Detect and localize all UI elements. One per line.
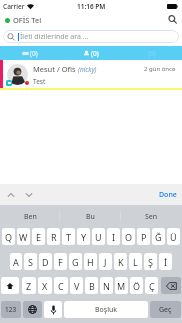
button[interactable]: X [38, 277, 52, 294]
staticText: (0) [148, 49, 156, 58]
button[interactable]: A [10, 253, 22, 270]
staticText: Carrier [3, 2, 25, 11]
button[interactable]: D [39, 253, 52, 270]
staticText: G [72, 256, 79, 268]
button[interactable]: L [129, 253, 142, 270]
staticText: 11:16 PM [77, 2, 106, 11]
button[interactable]: İleti dizilerinde ara ... [3, 30, 179, 43]
staticText: Boşluk [95, 305, 118, 315]
button[interactable]: K [114, 253, 127, 270]
button[interactable]: C [54, 277, 68, 294]
button[interactable]: Shift [1, 277, 19, 294]
button[interactable]: Ü [167, 228, 180, 245]
staticText: P [141, 231, 147, 243]
staticText: Done [159, 190, 177, 200]
button[interactable]: Ğ [152, 228, 165, 245]
button[interactable]: Search [167, 14, 178, 25]
button[interactable]: Previous field [4, 188, 18, 202]
staticText: İ [164, 256, 168, 268]
button[interactable]: N [100, 277, 113, 294]
staticText: K [118, 256, 124, 268]
button[interactable]: M [115, 277, 128, 294]
staticText: Z [26, 280, 32, 292]
staticText: Ö [133, 280, 141, 292]
button[interactable]: B [85, 277, 98, 294]
button[interactable]: Ç [145, 277, 158, 294]
staticText: OFİS Tel [13, 15, 42, 25]
staticText: İleti dizilerinde ara ... [20, 32, 89, 42]
button[interactable]: Ben [0, 205, 60, 228]
staticText: E [36, 231, 42, 243]
button[interactable]: Next field [22, 188, 36, 202]
staticText: O [125, 231, 133, 243]
button[interactable]: V [70, 277, 83, 294]
staticText: Sen [145, 212, 158, 222]
button[interactable]: Next keyboard [23, 301, 42, 318]
staticText: U [95, 231, 102, 243]
staticText: L [133, 256, 138, 268]
staticText: V [74, 280, 80, 292]
staticText: Ben [24, 212, 37, 222]
staticText: (0) [91, 49, 99, 58]
button[interactable]: Boşluk [64, 301, 148, 318]
staticText: (0) [30, 49, 38, 58]
button[interactable]: Y [77, 228, 90, 245]
button[interactable]: Ö [130, 277, 143, 294]
staticText: Q [5, 231, 13, 243]
button[interactable]: J [99, 253, 112, 270]
button[interactable]: Q [2, 228, 15, 245]
staticText: C [58, 280, 64, 292]
button[interactable]: E [32, 228, 45, 245]
staticText: T [66, 231, 72, 243]
button[interactable]: Ş [144, 253, 157, 270]
button[interactable]: W [17, 228, 30, 245]
button[interactable]: 123 [1, 301, 21, 318]
staticText: (nicky) [78, 65, 97, 74]
button[interactable]: H [84, 253, 97, 270]
button[interactable]: Z [22, 277, 36, 294]
button[interactable]: O [122, 228, 135, 245]
staticText: Test [33, 77, 46, 86]
staticText: Ğ [155, 231, 162, 243]
button[interactable]: T [62, 228, 75, 245]
button[interactable]: G [69, 253, 82, 270]
staticText: Ş [148, 256, 153, 268]
button[interactable]: P [137, 228, 150, 245]
button[interactable]: Done [154, 187, 182, 203]
staticText: 123 [5, 305, 17, 314]
staticText: X [42, 280, 48, 292]
staticText: Ç [149, 280, 155, 292]
staticText: B [89, 280, 95, 292]
button[interactable]: Backspace [161, 277, 181, 294]
staticText: J [104, 256, 107, 268]
staticText: M [117, 280, 126, 292]
button[interactable]: İ [159, 253, 172, 270]
staticText: A [13, 256, 19, 268]
button[interactable]: F [54, 253, 67, 270]
button[interactable]: Bu [60, 205, 121, 228]
staticText: Bu [86, 212, 95, 222]
staticText: I [112, 231, 116, 243]
button[interactable]: Sen [121, 205, 182, 228]
staticText: Geç [159, 305, 172, 315]
staticText: R [51, 231, 57, 243]
button[interactable]: I [107, 228, 120, 245]
button[interactable]: U [92, 228, 105, 245]
button[interactable]: (0) [0, 46, 60, 60]
button[interactable]: Geç [150, 301, 181, 318]
staticText: W [19, 231, 28, 243]
staticText: 2 gün önce [144, 65, 176, 73]
button[interactable]: R [47, 228, 60, 245]
staticText: F [58, 256, 63, 268]
button[interactable]: (0) [121, 46, 182, 60]
staticText: S [28, 256, 33, 268]
staticText: N [103, 280, 110, 292]
button[interactable]: Mesut / Ofis [0, 60, 182, 88]
button[interactable]: Dictation [44, 301, 62, 318]
staticText: H [87, 256, 94, 268]
staticText: Ü [170, 231, 177, 243]
button[interactable]: (0) [60, 46, 121, 60]
staticText: Mesut / Ofis [33, 64, 78, 74]
button[interactable]: S [24, 253, 37, 270]
staticText: Y [81, 231, 87, 243]
